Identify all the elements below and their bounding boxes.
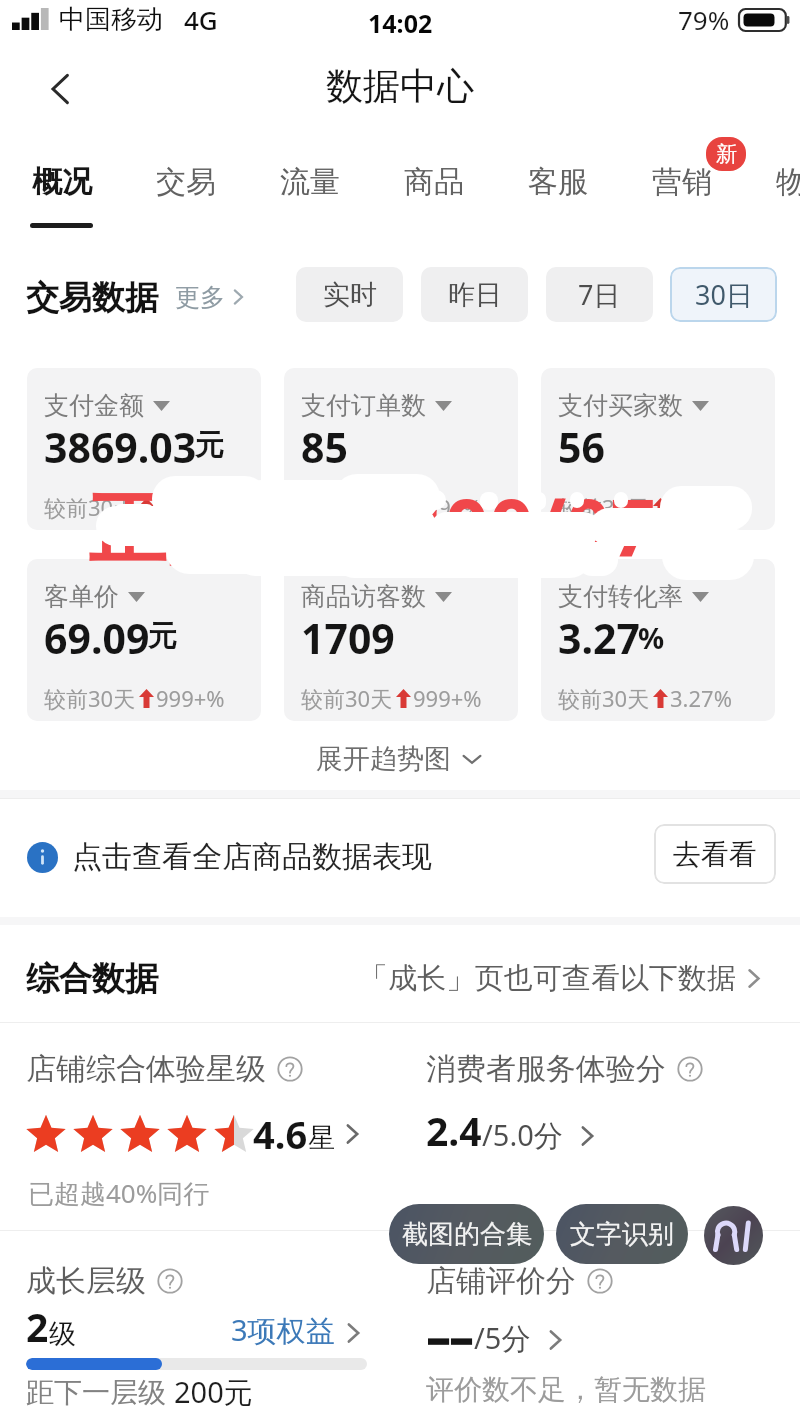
staticText: 3项权益 bbox=[231, 1310, 335, 1350]
button[interactable]: 支付订单数 bbox=[284, 368, 518, 530]
button[interactable]: 支付金额 bbox=[27, 368, 261, 530]
staticText: 200元 bbox=[174, 1372, 253, 1412]
button[interactable]: AI assistant bbox=[704, 1206, 763, 1265]
staticText: 已超越40%同行 bbox=[28, 1175, 210, 1211]
staticText: % bbox=[638, 618, 665, 657]
staticText: 较前30天 bbox=[44, 492, 136, 522]
button[interactable]: 4.6 bbox=[24, 1108, 364, 1160]
staticText: 文字识别 bbox=[570, 1218, 674, 1251]
staticText: 新 bbox=[716, 141, 737, 167]
button[interactable]: 客单价 bbox=[27, 559, 261, 721]
button[interactable]: 30日 bbox=[670, 267, 777, 322]
button[interactable]: 2.4 bbox=[426, 1104, 600, 1157]
staticText: 昨日 bbox=[448, 278, 502, 312]
staticText: 物流 bbox=[776, 163, 800, 201]
button[interactable]: 文字识别 bbox=[556, 1204, 688, 1264]
staticText: 客服 bbox=[528, 163, 588, 201]
staticText: 3869.03 bbox=[44, 419, 197, 475]
staticText: 「成长」页也可查看以下数据 bbox=[359, 960, 736, 997]
staticText: 营销 bbox=[652, 163, 712, 201]
button[interactable]: 展开趋势图 bbox=[316, 742, 484, 776]
staticText: 客单价 bbox=[44, 581, 119, 612]
staticText: 4G bbox=[184, 2, 218, 37]
staticText: 30日 bbox=[695, 276, 753, 313]
staticText: 更多 bbox=[175, 282, 225, 313]
staticText: 支付买家数 bbox=[558, 390, 683, 421]
staticText: 流量 bbox=[280, 163, 340, 201]
staticText: 7日 bbox=[578, 276, 621, 313]
button[interactable]: 支付买家数 bbox=[541, 368, 775, 530]
button[interactable]: 7日 bbox=[546, 267, 653, 322]
staticText: 较前30天 bbox=[301, 683, 393, 713]
staticText: 点击查看全店商品数据表现 bbox=[72, 838, 432, 876]
staticText: 999+% bbox=[156, 683, 225, 713]
staticText: 商品 bbox=[404, 163, 464, 201]
staticText: 交易 bbox=[156, 163, 216, 201]
staticText: 成长层级 bbox=[26, 1262, 146, 1300]
staticText: 元 bbox=[195, 427, 224, 464]
button[interactable]: 去看看 bbox=[654, 824, 776, 884]
staticText: 概况 bbox=[32, 163, 92, 201]
button[interactable]: 营销 bbox=[650, 160, 714, 232]
staticText: 截图的合集 bbox=[402, 1218, 532, 1251]
staticText: 4.6 bbox=[253, 1108, 308, 1160]
staticText: 数据中心 bbox=[326, 63, 474, 110]
button[interactable]: Back bbox=[30, 58, 92, 120]
button[interactable]: 物流 bbox=[774, 160, 800, 232]
staticText: 去看看 bbox=[673, 837, 757, 872]
button[interactable]: 商品访客数 bbox=[284, 559, 518, 721]
staticText: 56 bbox=[558, 419, 605, 475]
button[interactable]: 昨日 bbox=[421, 267, 528, 322]
staticText: 较前30天 bbox=[558, 683, 650, 713]
staticText: 交易数据 bbox=[26, 277, 158, 319]
button[interactable]: 客服 bbox=[526, 160, 590, 232]
staticText: 2 bbox=[26, 1300, 49, 1353]
staticText: 较前30天 bbox=[558, 492, 650, 522]
staticText: /5.0分 bbox=[482, 1115, 563, 1155]
button[interactable]: 点击查看全店商品数据表现 bbox=[27, 838, 432, 876]
button[interactable]: 交易 bbox=[154, 160, 218, 232]
staticText: 14:02 bbox=[368, 6, 433, 40]
staticText: 1709 bbox=[301, 610, 395, 666]
staticText: 中国移动 bbox=[59, 3, 163, 36]
button[interactable]: /5分 bbox=[426, 1320, 568, 1360]
staticText: 星 bbox=[308, 1121, 335, 1155]
button[interactable]: 2 bbox=[26, 1300, 366, 1353]
staticText: 店铺评价分 bbox=[426, 1262, 576, 1300]
staticText: 69.09 bbox=[44, 610, 150, 666]
staticText: 支付转化率 bbox=[558, 581, 683, 612]
button[interactable]: 「成长」页也可查看以下数据 bbox=[359, 960, 766, 997]
button[interactable]: 交易数据 bbox=[26, 277, 248, 319]
staticText: 3.27 bbox=[558, 610, 640, 666]
staticText: 较前30天 bbox=[44, 683, 136, 713]
button[interactable]: 概况 bbox=[30, 160, 94, 232]
button[interactable]: 实时 bbox=[296, 267, 403, 322]
button[interactable]: 截图的合集 bbox=[389, 1204, 544, 1264]
staticText: 支付订单数 bbox=[301, 390, 426, 421]
button[interactable]: 支付转化率 bbox=[541, 559, 775, 721]
staticText: 2.4 bbox=[426, 1104, 482, 1157]
staticText: 79% bbox=[678, 2, 730, 37]
staticText: 级 bbox=[49, 1317, 76, 1351]
staticText: 店铺综合体验星级 bbox=[26, 1050, 266, 1088]
staticText: /5分 bbox=[474, 1318, 531, 1358]
staticText: 商品访客数 bbox=[301, 581, 426, 612]
staticText: 综合数据 bbox=[26, 958, 158, 1000]
button[interactable]: 流量 bbox=[278, 160, 342, 232]
staticText: 展开趋势图 bbox=[316, 742, 451, 776]
staticText: 支付金额 bbox=[44, 390, 144, 421]
staticText: 距下一层级 bbox=[26, 1375, 166, 1410]
staticText: 实时 bbox=[323, 278, 377, 312]
staticText: 85 bbox=[301, 419, 348, 475]
staticText: 正品保障400/07 bbox=[88, 473, 656, 580]
button[interactable]: 商品 bbox=[402, 160, 466, 232]
staticText: 消费者服务体验分 bbox=[426, 1050, 666, 1088]
staticText: 评价数不足，暂无数据 bbox=[426, 1372, 706, 1407]
staticText: 3.27% bbox=[670, 683, 732, 713]
staticText: 999+% bbox=[413, 683, 482, 713]
staticText: 999+% bbox=[413, 492, 482, 522]
staticText: 元 bbox=[148, 618, 177, 655]
